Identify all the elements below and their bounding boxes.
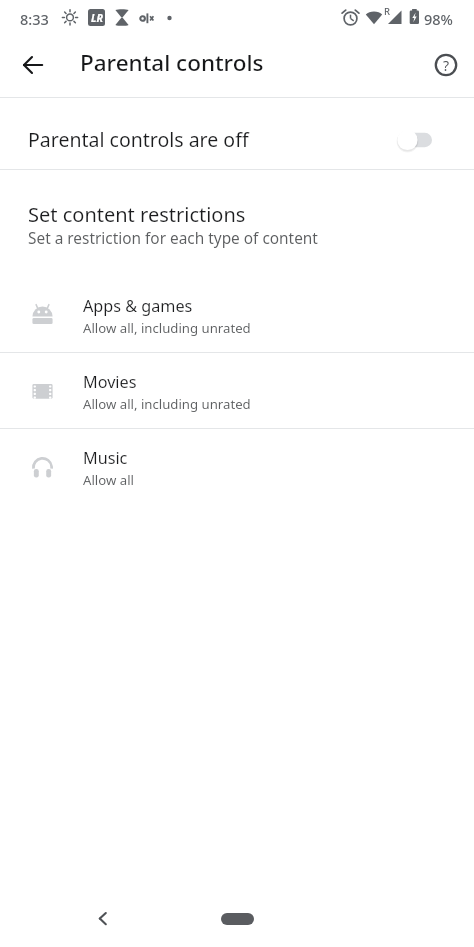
staticText: Movies (83, 371, 137, 393)
button[interactable]: Home (221, 913, 254, 925)
button[interactable]: Back (12, 44, 54, 86)
button[interactable]: Parental controls are off (0, 104, 474, 175)
staticText: ? (443, 56, 450, 75)
staticText: Parental controls (80, 47, 264, 78)
staticText: 98% (424, 9, 453, 29)
staticText: Parental controls are off (28, 126, 249, 153)
staticText: Set a restriction for each type of conte… (28, 228, 318, 249)
button[interactable]: Parental controls toggle, off (397, 126, 433, 154)
button[interactable]: Back (89, 904, 117, 932)
staticText: R (384, 5, 391, 18)
staticText: Apps & games (83, 295, 193, 317)
staticText: 8:33 (20, 9, 49, 29)
staticText: LR (91, 11, 103, 25)
button[interactable]: Help (425, 44, 467, 86)
button[interactable]: Movies (0, 353, 474, 428)
staticText: Set content restrictions (28, 201, 246, 228)
button[interactable]: Music (0, 429, 474, 504)
staticText: Allow all, including unrated (83, 319, 251, 337)
staticText: Allow all (83, 471, 134, 489)
staticText: Music (83, 447, 128, 469)
staticText: Allow all, including unrated (83, 395, 251, 413)
button[interactable]: Apps & games (0, 277, 474, 352)
